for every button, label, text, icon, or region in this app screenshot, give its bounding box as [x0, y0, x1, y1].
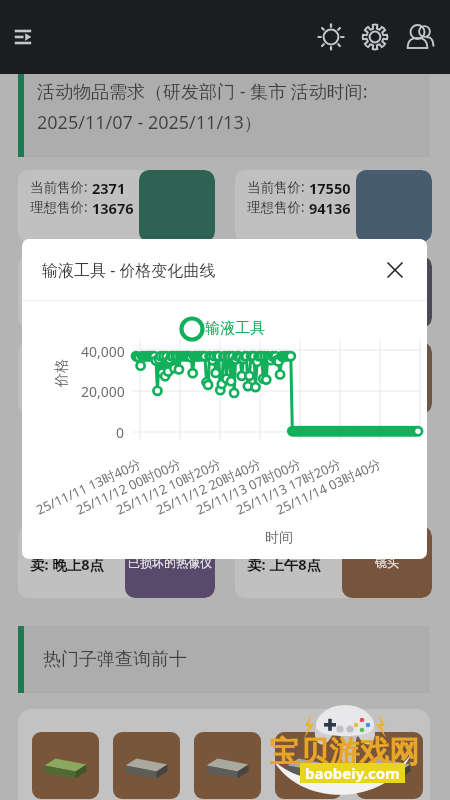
- staticText: 25/11/13 07时00分: [193, 454, 304, 519]
- button[interactable]: [356, 732, 423, 799]
- staticText: 32400: [309, 284, 351, 304]
- staticText: 25/11/12 10时20分: [113, 454, 224, 519]
- staticText: 24100: [92, 284, 134, 304]
- staticText: 理想售价:: [30, 370, 92, 388]
- staticText: 理想售价:: [30, 284, 92, 302]
- staticText: 理想售价:: [247, 198, 309, 216]
- staticText: 17550: [309, 178, 351, 198]
- staticText: 理想售价:: [247, 370, 309, 388]
- button[interactable]: 当前售价:: [235, 256, 432, 328]
- staticText: 3120: [92, 264, 126, 284]
- button[interactable]: 活动物品需求（研发部门 - 集市 活动时间: 2025/11/07 - 2025…: [18, 74, 430, 157]
- staticText: 输液工具: [205, 319, 265, 338]
- button[interactable]: 当前售价:: [235, 170, 432, 242]
- staticText: 理想售价:: [247, 284, 309, 302]
- staticText: 当前售价:: [247, 350, 309, 368]
- staticText: 13676: [92, 198, 134, 218]
- staticText: 25/11/12 00时00分: [73, 454, 184, 519]
- staticText: 1450: [92, 350, 126, 370]
- staticText: 94136: [309, 198, 351, 218]
- button[interactable]: Account: [400, 18, 438, 56]
- button[interactable]: Close: [381, 256, 409, 284]
- staticText: 当前售价:: [30, 178, 92, 196]
- staticText: 9870: [92, 370, 126, 390]
- staticText: 当前售价:: [30, 264, 92, 282]
- staticText: 22340: [309, 350, 351, 370]
- staticText: 卖: 上午8点: [247, 554, 322, 574]
- staticText: 宝贝游戏网: [269, 733, 419, 771]
- staticText: 输液工具 - 价格变化曲线: [42, 259, 216, 281]
- staticText: baobeiy.com: [305, 763, 400, 783]
- staticText: 已损坏的热像仪: [128, 555, 212, 570]
- button[interactable]: 当前售价:: [18, 170, 215, 242]
- staticText: 镜头: [375, 555, 399, 570]
- button[interactable]: [113, 732, 180, 799]
- button[interactable]: 买: 下午3点: [235, 526, 432, 598]
- staticText: 买: 下午3点: [247, 534, 322, 554]
- staticText: 25/11/14 03时40分: [273, 454, 384, 519]
- button[interactable]: 买: 凌晨0点: [18, 526, 215, 598]
- staticText: 25/11/12 20时40分: [153, 454, 264, 519]
- staticText: 当前售价:: [247, 178, 309, 196]
- staticText: 价格: [53, 359, 71, 387]
- staticText: 40,000: [81, 342, 125, 361]
- button[interactable]: [194, 732, 261, 799]
- button[interactable]: [32, 732, 99, 799]
- button[interactable]: 当前售价:: [18, 342, 215, 414]
- button[interactable]: Menu: [4, 18, 42, 56]
- button[interactable]: 热门子弹查询前十: [18, 626, 430, 693]
- staticText: 当前售价:: [30, 350, 92, 368]
- button[interactable]: Settings: [356, 18, 394, 56]
- staticText: 时间: [265, 529, 293, 547]
- button[interactable]: 当前售价:: [18, 256, 215, 328]
- button[interactable]: Brightness: [312, 18, 350, 56]
- staticText: 0: [116, 423, 125, 442]
- button[interactable]: 当前售价:: [235, 342, 432, 414]
- staticText: 25/11/11 13时40分: [33, 454, 144, 519]
- staticText: 理想售价:: [30, 198, 92, 216]
- staticText: 2371: [92, 178, 126, 198]
- staticText: 热门子弹查询前十: [43, 648, 187, 671]
- staticText: 卖: 晚上8点: [30, 554, 105, 574]
- staticText: 活动物品需求（研发部门 - 集市 活动时间: 2025/11/07 - 2025…: [37, 79, 368, 134]
- staticText: 20,000: [81, 382, 125, 401]
- button[interactable]: [275, 732, 342, 799]
- staticText: 25/11/13 17时20分: [233, 454, 344, 519]
